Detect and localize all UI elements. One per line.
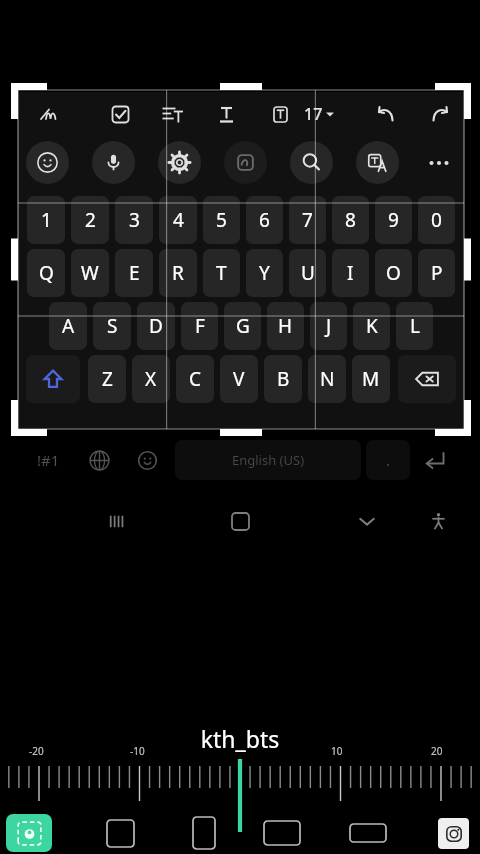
button[interactable]: Settings xyxy=(158,141,201,184)
staticText: R xyxy=(172,260,184,286)
button[interactable]: 4 xyxy=(159,196,197,244)
staticText: S xyxy=(107,313,118,339)
staticText: N xyxy=(320,366,335,392)
staticText: T xyxy=(216,260,227,286)
button[interactable]: Text style xyxy=(204,92,248,136)
button[interactable]: Backspace xyxy=(398,355,456,403)
button[interactable]: L xyxy=(396,302,433,350)
staticText: J xyxy=(326,313,332,339)
button[interactable]: Sticker xyxy=(224,141,267,184)
button[interactable]: P xyxy=(418,249,455,297)
button[interactable]: R xyxy=(159,249,197,297)
button[interactable]: Translate xyxy=(356,141,399,184)
staticText: W xyxy=(81,260,99,286)
staticText: 6 xyxy=(259,207,270,233)
staticText: O xyxy=(386,260,401,286)
button[interactable]: F xyxy=(181,302,218,350)
button[interactable]: Instagram ratio xyxy=(438,818,469,849)
button[interactable]: G xyxy=(224,302,261,350)
button[interactable]: N xyxy=(308,355,346,403)
button[interactable]: Text box xyxy=(258,92,302,136)
staticText: Y xyxy=(259,260,270,286)
button[interactable]: X xyxy=(132,355,170,403)
staticText: F xyxy=(195,313,205,339)
staticText: 8 xyxy=(345,207,356,233)
button[interactable]: Portrait 3 to 4 xyxy=(180,814,228,852)
button[interactable]: A xyxy=(49,302,87,350)
button[interactable]: Shift xyxy=(26,355,80,403)
button[interactable]: I xyxy=(332,249,369,297)
staticText: B xyxy=(277,366,290,392)
button[interactable]: S xyxy=(93,302,131,350)
button[interactable]: C xyxy=(176,355,214,403)
button[interactable]: Redo xyxy=(418,92,462,136)
button[interactable]: Square 1 to 1 xyxy=(96,814,144,852)
button[interactable]: Change language xyxy=(74,434,124,486)
button[interactable]: T xyxy=(203,249,240,297)
button[interactable]: 6 xyxy=(246,196,283,244)
staticText: 7 xyxy=(302,207,313,233)
button[interactable]: U xyxy=(289,249,326,297)
staticText: Z xyxy=(102,366,113,392)
button[interactable]: Undo xyxy=(363,92,407,136)
staticText: 9 xyxy=(388,207,399,233)
button[interactable]: English (US) xyxy=(175,440,361,480)
button[interactable]: Text align xyxy=(150,92,194,136)
staticText: K xyxy=(366,313,378,339)
button[interactable]: Emoji xyxy=(26,141,69,184)
button[interactable]: Wide 16 to 9 xyxy=(344,814,392,852)
button[interactable]: Symbols xyxy=(22,434,74,486)
button[interactable]: Handwriting xyxy=(26,92,70,136)
button[interactable]: 0 xyxy=(418,196,455,244)
button[interactable]: B xyxy=(264,355,302,403)
button[interactable]: 7 xyxy=(289,196,326,244)
staticText: U xyxy=(301,260,315,286)
staticText: G xyxy=(236,313,250,339)
button[interactable]: Free crop xyxy=(6,814,52,852)
button[interactable]: Voice input xyxy=(92,141,135,184)
button[interactable]: J xyxy=(310,302,347,350)
button[interactable]: Home xyxy=(217,498,263,544)
button[interactable]: 8 xyxy=(332,196,369,244)
button[interactable]: Search xyxy=(290,141,333,184)
staticText: P xyxy=(431,260,443,286)
button[interactable]: Y xyxy=(246,249,283,297)
button[interactable]: O xyxy=(375,249,412,297)
staticText: English (US) xyxy=(232,451,305,469)
button[interactable]: 5 xyxy=(203,196,240,244)
button[interactable]: 17 xyxy=(302,102,336,126)
staticText: 2 xyxy=(85,207,96,233)
staticText: 20 xyxy=(431,744,443,758)
button[interactable]: D xyxy=(137,302,175,350)
button[interactable]: V xyxy=(220,355,258,403)
staticText: . xyxy=(386,450,391,470)
button[interactable]: Enter xyxy=(410,434,458,486)
button[interactable]: W xyxy=(71,249,109,297)
button[interactable]: Select xyxy=(98,92,142,136)
button[interactable]: H xyxy=(267,302,304,350)
staticText: -10 xyxy=(130,744,145,758)
button[interactable]: Q xyxy=(27,249,65,297)
button[interactable]: Hide keyboard xyxy=(344,498,390,544)
button[interactable]: Landscape 4 to 3 xyxy=(258,814,306,852)
button[interactable]: 3 xyxy=(115,196,153,244)
button[interactable]: Recent apps xyxy=(93,498,139,544)
staticText: 3 xyxy=(129,207,140,233)
button[interactable]: Z xyxy=(88,355,126,403)
button[interactable]: 9 xyxy=(375,196,412,244)
button[interactable]: K xyxy=(353,302,390,350)
button[interactable]: M xyxy=(352,355,390,403)
staticText: 0 xyxy=(431,207,442,233)
staticText: -20 xyxy=(29,744,44,758)
button[interactable]: 1 xyxy=(27,196,65,244)
button[interactable]: 2 xyxy=(71,196,109,244)
staticText: D xyxy=(149,313,163,339)
staticText: A xyxy=(62,313,75,339)
staticText: C xyxy=(189,366,202,392)
button[interactable]: E xyxy=(115,249,153,297)
button[interactable]: More options xyxy=(418,142,460,184)
button[interactable]: Emoji keyboard xyxy=(124,434,170,486)
staticText: 4 xyxy=(173,207,184,233)
button[interactable]: Accessibility xyxy=(415,498,461,544)
